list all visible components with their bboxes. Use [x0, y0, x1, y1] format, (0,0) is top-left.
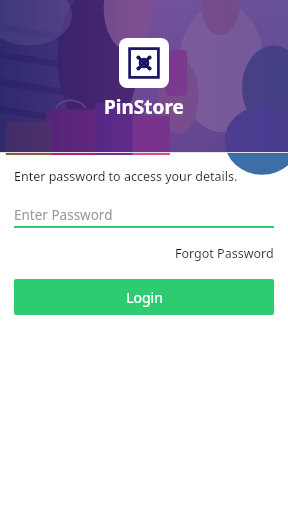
button[interactable]: Forgot Password: [175, 242, 274, 265]
staticText: Enter password to access your details.: [14, 168, 238, 185]
staticText: Login: [126, 288, 163, 307]
button[interactable]: Login: [14, 279, 274, 315]
other: PinStore logo: [119, 38, 169, 88]
staticText: PinStore: [104, 94, 184, 120]
staticText: Enter Password: [14, 206, 113, 224]
button[interactable]: Enter Password: [14, 203, 274, 228]
staticText: Forgot Password: [175, 245, 274, 262]
